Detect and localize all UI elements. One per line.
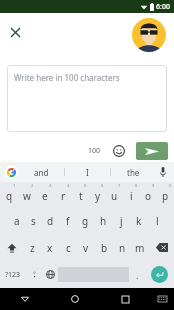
button[interactable]: 4	[54, 182, 72, 208]
staticText: q	[6, 189, 13, 203]
button[interactable]: d	[42, 208, 59, 234]
button[interactable]: Write here in 100 characters	[7, 65, 167, 132]
staticText: j	[120, 214, 123, 228]
staticText: w	[23, 189, 31, 203]
button[interactable]: ?123	[0, 261, 26, 288]
staticText: z	[30, 241, 35, 255]
staticText: m	[135, 241, 145, 255]
staticText: y	[95, 189, 101, 203]
button[interactable]: Emoji	[110, 142, 128, 160]
button[interactable]: Period	[129, 261, 145, 288]
button[interactable]: the	[111, 162, 156, 182]
staticText: .	[136, 269, 139, 281]
staticText: r	[61, 189, 66, 203]
button[interactable]: 3	[36, 182, 54, 208]
staticText: 2	[31, 183, 34, 188]
staticText: b	[101, 241, 108, 255]
button[interactable]: Enter	[151, 266, 168, 283]
button[interactable]: Change language	[42, 261, 58, 288]
button[interactable]: l	[148, 208, 166, 234]
staticText: v	[83, 241, 89, 255]
button[interactable]: k	[130, 208, 148, 234]
button[interactable]: n	[113, 234, 131, 261]
button[interactable]: 8	[123, 182, 140, 208]
staticText: f	[66, 214, 70, 228]
button[interactable]: 2	[18, 182, 36, 208]
button[interactable]: x	[41, 234, 59, 261]
staticText: 6	[101, 183, 104, 188]
staticText: k	[136, 214, 142, 228]
staticText: d	[47, 214, 54, 228]
staticText: a	[14, 214, 20, 228]
button[interactable]: 6	[89, 182, 106, 208]
staticText: I	[86, 167, 89, 178]
staticText: t	[79, 189, 83, 203]
button[interactable]: Home	[50, 288, 100, 310]
button[interactable]: j	[112, 208, 130, 234]
staticText: ?123	[5, 270, 21, 280]
staticText: the	[127, 167, 140, 178]
staticText: 100	[88, 146, 101, 156]
staticText: c	[66, 241, 71, 255]
staticText: 6:00	[156, 2, 170, 12]
staticText: 4	[67, 183, 70, 188]
staticText: u	[111, 189, 118, 203]
button[interactable]: Backspace	[149, 234, 174, 261]
button[interactable]: Close	[4, 21, 26, 43]
button[interactable]: Google	[4, 165, 18, 179]
button[interactable]: h	[94, 208, 112, 234]
button[interactable]: Keyboard layout	[150, 288, 174, 310]
button[interactable]: f	[59, 208, 76, 234]
button[interactable]: g	[76, 208, 94, 234]
staticText: p	[162, 189, 169, 203]
staticText: e	[42, 189, 48, 203]
button[interactable]: Comma	[26, 261, 42, 288]
staticText: g	[82, 214, 89, 228]
button[interactable]: 0	[157, 182, 174, 208]
staticText: 1	[13, 183, 16, 188]
staticText: s	[31, 214, 36, 228]
button[interactable]: s	[25, 208, 42, 234]
button[interactable]: m	[131, 234, 149, 261]
button[interactable]: b	[95, 234, 113, 261]
button[interactable]: Voice input	[156, 165, 170, 179]
staticText: 3	[49, 183, 52, 188]
staticText: x	[47, 241, 53, 255]
staticText: Write here in 100 characters	[14, 72, 120, 83]
staticText: and	[34, 167, 49, 178]
staticText: 5	[84, 183, 87, 188]
button[interactable]: Send	[136, 142, 168, 160]
button[interactable]: 1	[0, 182, 18, 208]
button[interactable]: Shift	[0, 234, 24, 261]
button[interactable]: z	[24, 234, 41, 261]
staticText: n	[119, 241, 126, 255]
staticText: o	[145, 189, 152, 203]
button[interactable]: 7	[106, 182, 123, 208]
button[interactable]: v	[77, 234, 95, 261]
staticText: 0	[169, 183, 172, 188]
button[interactable]: Recent apps	[100, 288, 150, 310]
button[interactable]: c	[59, 234, 77, 261]
staticText: h	[100, 214, 107, 228]
button[interactable]: Profile avatar	[132, 18, 166, 52]
staticText: 8	[135, 183, 138, 188]
button[interactable]: a	[8, 208, 25, 234]
staticText: 7	[118, 183, 121, 188]
staticText: 9	[152, 183, 155, 188]
button[interactable]: and	[18, 162, 64, 182]
button[interactable]: I	[65, 162, 110, 182]
staticText: l	[156, 214, 159, 228]
button[interactable]: 9	[140, 182, 157, 208]
staticText: i	[130, 189, 133, 203]
button[interactable]: 5	[72, 182, 89, 208]
button[interactable]: Back	[0, 288, 50, 310]
